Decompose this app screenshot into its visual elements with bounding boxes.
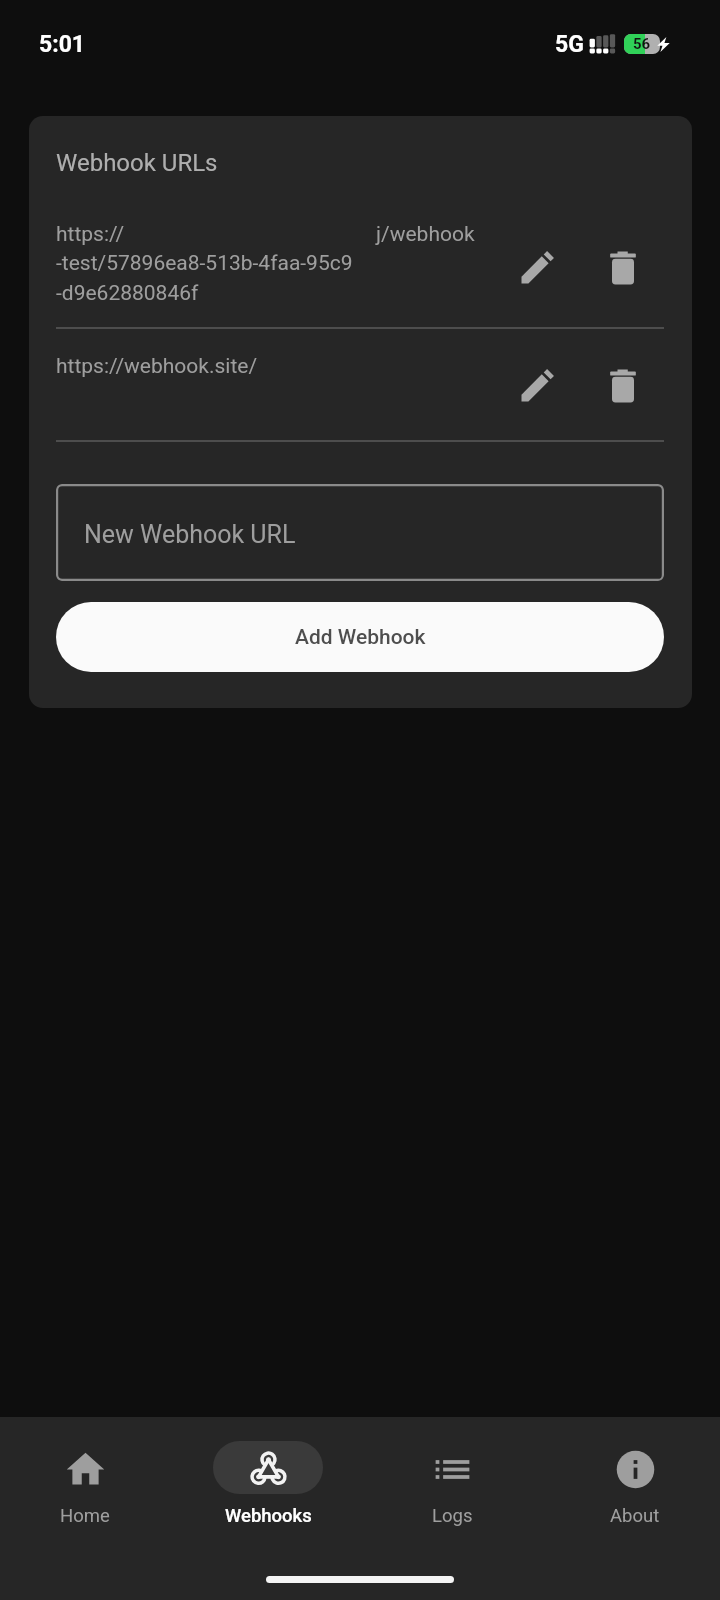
staticText: 56 [633,35,651,53]
button[interactable]: Logs [397,1417,507,1527]
button[interactable]: Webhooks [213,1417,323,1527]
staticText: Logs [432,1505,473,1527]
button[interactable]: Add Webhook [56,602,664,672]
staticText: -d9e62880846f [56,281,199,306]
button[interactable]: Delete [597,360,649,412]
button[interactable]: About [580,1417,690,1527]
button[interactable]: Delete [597,242,649,294]
button[interactable]: Edit [512,359,564,411]
button[interactable]: Home [30,1417,140,1527]
button[interactable]: Edit [512,241,564,293]
staticText: https:// [56,222,125,247]
staticText: Add Webhook [295,625,426,650]
staticText: Webhooks [225,1505,312,1527]
staticText: Home [60,1505,110,1527]
staticText: j/webhook [376,222,475,247]
staticText: -test/57896ea8-513b-4faa-95c9 [56,251,353,276]
staticText: About [610,1505,660,1527]
staticText: Webhook URLs [56,149,218,177]
staticText: New Webhook URL [84,520,296,549]
button[interactable]: New Webhook URL [56,484,664,581]
staticText: https://webhook.site/ [56,354,258,379]
staticText: 5G [555,31,584,58]
staticText: 5:01 [39,31,86,58]
